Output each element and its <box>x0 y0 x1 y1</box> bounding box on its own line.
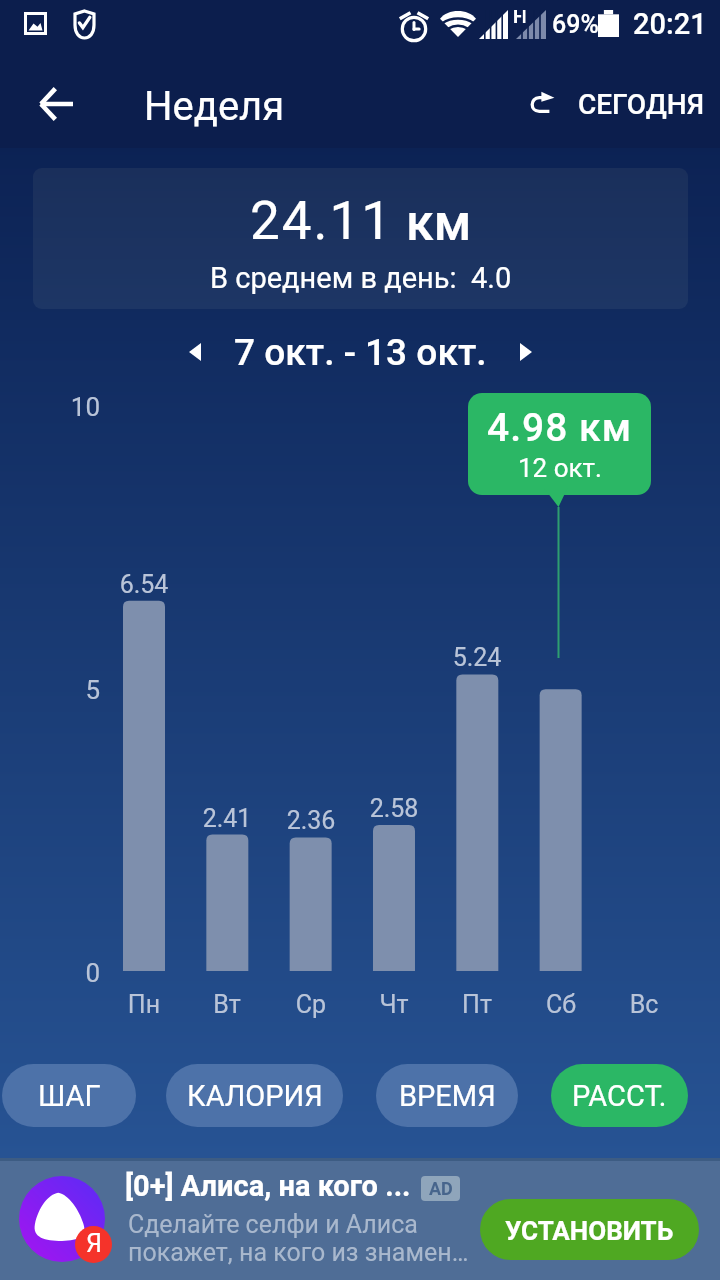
button[interactable]: СЕГОДНЯ <box>522 72 720 136</box>
staticText: 6.54 <box>94 570 194 599</box>
staticText: 2.41 <box>177 804 277 833</box>
button[interactable]: РАССТ. <box>551 1064 688 1127</box>
staticText: AD <box>429 1178 453 1199</box>
button[interactable]: Next week <box>504 328 552 376</box>
button[interactable]: Previous week <box>169 328 217 376</box>
staticText: Вт <box>177 990 277 1019</box>
staticText: Сб <box>511 990 611 1019</box>
staticText: 69% <box>552 10 599 39</box>
staticText: 20:21 <box>633 7 707 41</box>
staticText: км <box>406 194 472 253</box>
staticText: покажет, на кого из знамен… <box>128 1238 469 1267</box>
staticText: В среднем в день: 4.0 <box>210 261 512 295</box>
button[interactable]: УСТАНОВИТЬ <box>480 1199 699 1260</box>
button[interactable]: ШАГ <box>2 1064 136 1127</box>
staticText: 10 <box>20 392 100 422</box>
staticText: 24.11 <box>250 190 394 252</box>
staticText: Чт <box>344 990 444 1019</box>
staticText: Ср <box>261 990 361 1019</box>
staticText: Пт <box>427 990 527 1019</box>
staticText: ШАГ <box>38 1079 101 1113</box>
staticText: 4.98 км <box>487 405 633 451</box>
staticText: Вс <box>594 990 694 1019</box>
staticText: УСТАНОВИТЬ <box>505 1216 674 1246</box>
staticText: КАЛОРИЯ <box>187 1079 323 1113</box>
staticText: 0 <box>20 958 100 988</box>
staticText: 5 <box>20 675 100 705</box>
staticText: ВРЕМЯ <box>399 1079 496 1113</box>
button[interactable]: 4.98 км <box>468 393 651 495</box>
staticText: 2.58 <box>344 794 444 823</box>
staticText: H <box>513 5 527 27</box>
staticText: Пн <box>94 990 194 1019</box>
button[interactable]: 24.11 <box>33 168 688 309</box>
staticText: РАССТ. <box>572 1079 667 1113</box>
button[interactable]: Я <box>0 1158 720 1280</box>
staticText: СЕГОДНЯ <box>578 88 705 121</box>
staticText: [0+] Алиса, на кого ... <box>125 1169 411 1203</box>
staticText: Неделя <box>144 83 285 130</box>
button[interactable]: Back <box>22 70 90 138</box>
button[interactable]: ВРЕМЯ <box>376 1064 518 1127</box>
staticText: 12 окт. <box>518 453 602 483</box>
staticText: 5.24 <box>427 643 527 672</box>
staticText: 7 окт. - 13 окт. <box>234 331 487 374</box>
staticText: Сделайте селфи и Алиса <box>128 1210 418 1239</box>
button[interactable]: КАЛОРИЯ <box>166 1064 343 1127</box>
staticText: 2.36 <box>261 806 361 835</box>
staticText: Я <box>86 1229 102 1258</box>
